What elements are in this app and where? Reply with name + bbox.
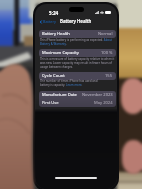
button[interactable]: Back [40, 19, 56, 24]
staticText: This iPhone battery is performing as exp… [40, 38, 113, 42]
staticText: Maximum Capacity [42, 50, 79, 56]
staticText: November 2023 [82, 92, 113, 98]
button[interactable]: Maximum Capacity [39, 49, 116, 57]
staticText: usage between charges. [40, 65, 74, 69]
button[interactable]: First Use [39, 99, 116, 107]
staticText: Normal [98, 31, 113, 37]
staticText: Battery [43, 19, 56, 24]
button[interactable]: Manufacture Date [39, 91, 116, 99]
button[interactable]: Battery Health [39, 30, 116, 38]
staticText: The number of times iPhone has used and [40, 79, 98, 83]
staticText: Battery & Warranty. [40, 42, 67, 46]
staticText: was new. Lower capacity may result in fe… [40, 61, 113, 65]
button[interactable]: Cycle Count [39, 72, 116, 80]
staticText: Battery Health [42, 31, 70, 37]
staticText: Manufacture Date [42, 92, 77, 98]
staticText: 155 [105, 73, 113, 79]
staticText: Cycle Count [42, 73, 65, 79]
staticText: battery is capacity. Learn more. [40, 83, 83, 87]
staticText: 5:24 [49, 10, 59, 16]
staticText: This is a measure of battery capacity re… [40, 57, 115, 61]
staticText: 100 % [101, 50, 113, 56]
staticText: May 2024 [94, 100, 113, 106]
staticText: Battery Health [60, 18, 92, 24]
other: Back [40, 20, 42, 24]
staticText: First Use [42, 100, 59, 106]
